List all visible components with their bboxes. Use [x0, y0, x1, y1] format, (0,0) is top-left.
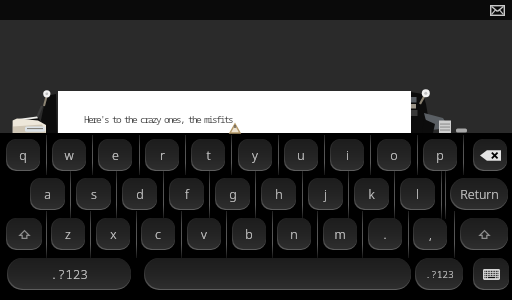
staticText: r	[160, 147, 165, 164]
button[interactable]: c	[141, 218, 175, 250]
button[interactable]: h	[261, 178, 296, 210]
button[interactable]: Backspace	[473, 139, 507, 171]
button[interactable]: z	[51, 218, 85, 250]
staticText: Here's to the crazy ones, the misfits	[84, 113, 233, 126]
staticText: h	[275, 186, 283, 203]
staticText: k	[368, 186, 375, 203]
button[interactable]: u	[284, 139, 318, 171]
staticText: q	[19, 147, 27, 164]
staticText: g	[229, 186, 237, 203]
button[interactable]: .?123	[7, 258, 131, 290]
staticText: f	[185, 186, 189, 203]
button[interactable]: Shift	[6, 218, 42, 250]
button[interactable]: d	[122, 178, 157, 210]
staticText: .?123	[50, 266, 88, 283]
button[interactable]: a	[30, 178, 65, 210]
button[interactable]: k	[354, 178, 389, 210]
button[interactable]: .?123	[415, 258, 463, 290]
button[interactable]: p	[423, 139, 457, 171]
button[interactable]: Return	[450, 178, 508, 210]
button[interactable]: e	[98, 139, 132, 171]
staticText: j	[324, 186, 327, 203]
button[interactable]: ,	[413, 218, 447, 250]
staticText: u	[297, 147, 305, 164]
staticText: .?123	[425, 268, 454, 281]
button[interactable]: i	[330, 139, 364, 171]
staticText: x	[110, 226, 117, 243]
staticText: d	[136, 186, 144, 203]
staticText: s	[91, 186, 97, 203]
staticText: e	[112, 147, 119, 164]
button[interactable]: n	[277, 218, 311, 250]
staticText: w	[64, 147, 74, 164]
button[interactable]: w	[52, 139, 86, 171]
button[interactable]: Hide keyboard	[473, 258, 509, 290]
staticText: v	[201, 226, 207, 243]
staticText: a	[44, 186, 51, 203]
staticText: Return	[460, 186, 499, 203]
button[interactable]: f	[169, 178, 204, 210]
button[interactable]: s	[76, 178, 111, 210]
staticText: .	[383, 226, 387, 243]
staticText: c	[155, 226, 161, 243]
staticText: l	[416, 186, 419, 203]
staticText: b	[245, 226, 253, 243]
button[interactable]: g	[215, 178, 250, 210]
button[interactable]: Messages	[487, 2, 508, 19]
button[interactable]: Shift	[460, 218, 508, 250]
staticText: y	[252, 147, 258, 164]
button[interactable]: Space	[144, 258, 411, 290]
button[interactable]: x	[96, 218, 130, 250]
staticText: m	[334, 226, 346, 243]
staticText: p	[436, 147, 444, 164]
button[interactable]: t	[191, 139, 225, 171]
button[interactable]: o	[377, 139, 411, 171]
staticText: z	[65, 226, 71, 243]
button[interactable]: b	[232, 218, 266, 250]
button[interactable]: l	[400, 178, 435, 210]
button[interactable]: .	[368, 218, 402, 250]
staticText: i	[346, 147, 349, 164]
button[interactable]: y	[238, 139, 272, 171]
button[interactable]: q	[6, 139, 40, 171]
staticText: o	[390, 147, 398, 164]
button[interactable]: r	[145, 139, 179, 171]
button[interactable]: m	[323, 218, 357, 250]
button[interactable]: v	[187, 218, 221, 250]
button[interactable]: j	[308, 178, 343, 210]
staticText: ,	[429, 226, 432, 243]
staticText: t	[206, 147, 211, 164]
staticText: n	[290, 226, 298, 243]
